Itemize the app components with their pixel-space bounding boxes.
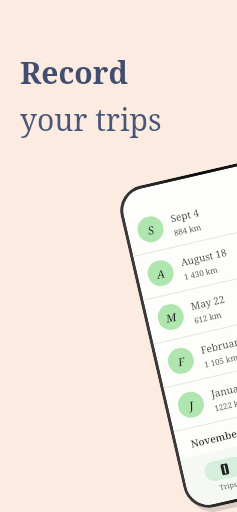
staticText: 1 430 km <box>183 263 219 282</box>
button[interactable]: Trips <box>182 450 237 500</box>
staticText: F <box>176 353 187 369</box>
staticText: your trips <box>20 99 162 140</box>
staticText: J <box>187 397 196 413</box>
staticText: 1222 km <box>213 395 237 413</box>
staticText: May 22 <box>189 292 227 313</box>
staticText: Record <box>20 52 128 93</box>
button[interactable]: M <box>143 264 237 344</box>
staticText: February 9 <box>199 331 237 357</box>
staticText: November <box>189 425 237 451</box>
staticText: M <box>164 309 178 326</box>
staticText: 1 105 km <box>203 351 237 370</box>
staticText: January 3 <box>209 376 237 401</box>
button[interactable]: J <box>164 352 237 431</box>
staticText: 612 km <box>193 309 223 326</box>
staticText: A <box>155 265 166 282</box>
staticText: Trips <box>218 479 237 493</box>
button[interactable]: A <box>133 220 237 300</box>
staticText: 884 km <box>173 221 202 238</box>
staticText: Sept 4 <box>169 205 200 225</box>
staticText: August 18 <box>179 245 228 269</box>
button[interactable]: S <box>123 176 237 256</box>
button[interactable]: F <box>153 308 237 387</box>
staticText: S <box>146 222 156 238</box>
